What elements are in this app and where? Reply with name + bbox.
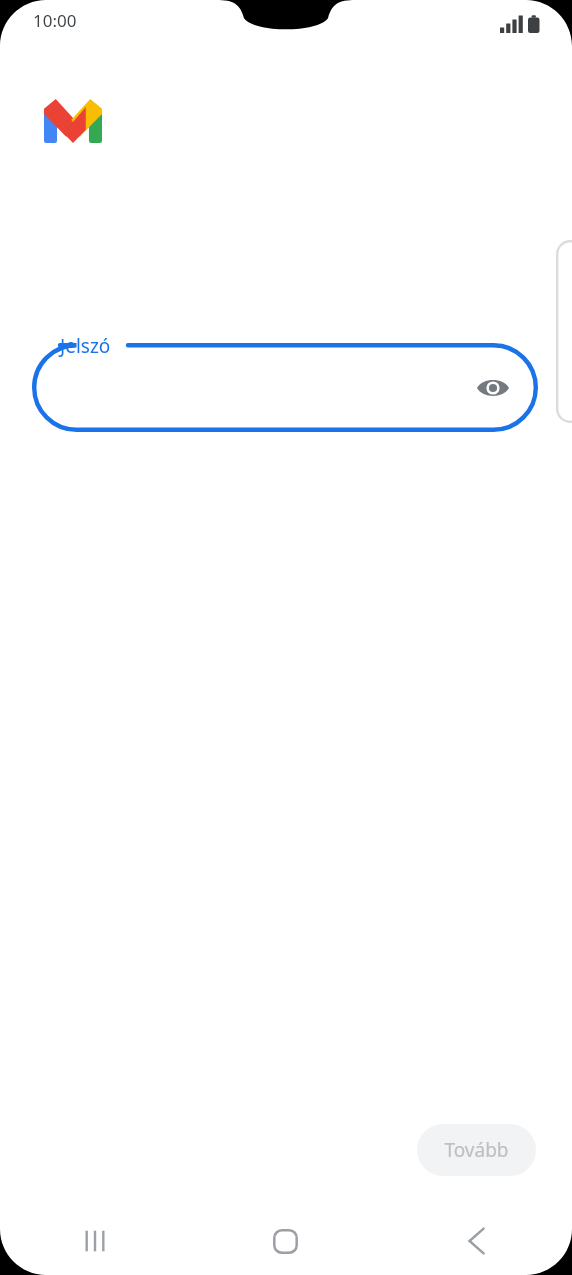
staticText: 10:00 [33, 9, 77, 32]
button[interactable]: Home [190, 1207, 381, 1275]
button[interactable]: Show password [470, 365, 516, 411]
button[interactable]: Back [381, 1207, 572, 1275]
staticText: Jelszó [60, 333, 111, 359]
staticText: Tovább [444, 1137, 509, 1163]
button[interactable]: Show password [32, 343, 538, 432]
button[interactable]: Tovább [417, 1124, 536, 1176]
button[interactable]: Recent apps [0, 1207, 190, 1275]
